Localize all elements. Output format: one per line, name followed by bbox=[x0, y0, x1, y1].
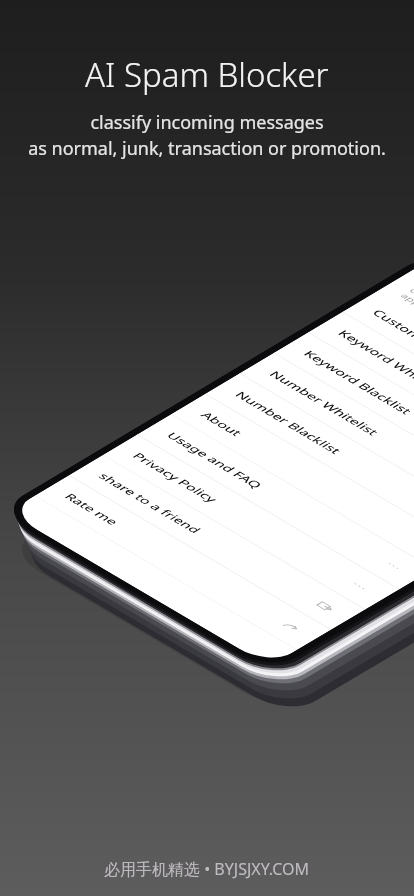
button[interactable]: Keyword Blacklist bbox=[274, 332, 414, 508]
staticText: AI Spam Blocker bbox=[85, 52, 329, 97]
staticText: About bbox=[197, 409, 246, 438]
staticText: Custom Classification bbox=[368, 307, 414, 390]
staticText: Usage and FAQ bbox=[163, 430, 266, 491]
staticText: share to a friend bbox=[95, 471, 205, 536]
staticText: Privacy Policy bbox=[129, 450, 221, 505]
button[interactable]: Rate me bbox=[35, 475, 331, 650]
button[interactable]: Number Whitelist bbox=[240, 353, 414, 528]
staticText: your messages never leave your device. a… bbox=[398, 281, 414, 434]
button[interactable]: share to a friend bbox=[69, 455, 365, 630]
button[interactable]: Number Blacklist bbox=[206, 373, 414, 548]
staticText: 必用手机精选 • BYJSJXY.COM bbox=[104, 858, 310, 880]
staticText: Number Blacklist bbox=[231, 389, 345, 457]
staticText: Number Whitelist bbox=[266, 369, 383, 438]
button[interactable]: Keyword Whitelist bbox=[308, 312, 414, 487]
button[interactable]: About bbox=[171, 394, 414, 569]
staticText: Keyword Whitelist bbox=[334, 328, 414, 398]
staticText: Rate me bbox=[61, 491, 122, 527]
staticText: classify incoming messages as normal, ju… bbox=[28, 110, 386, 160]
button[interactable]: Usage and FAQ bbox=[137, 414, 414, 589]
staticText: Keyword Blacklist bbox=[300, 348, 414, 417]
button[interactable]: Privacy Policy bbox=[103, 435, 399, 609]
button[interactable]: Custom Classification bbox=[343, 291, 414, 467]
